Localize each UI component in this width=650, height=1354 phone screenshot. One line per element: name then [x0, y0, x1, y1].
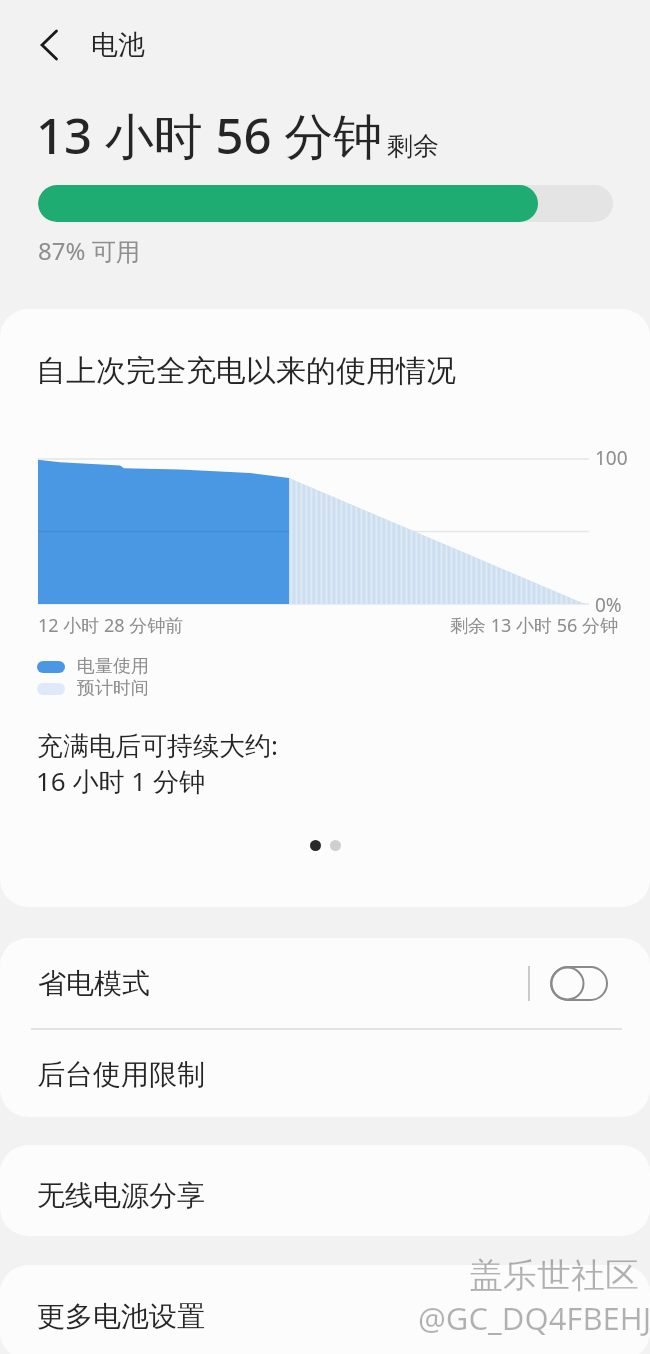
staticText: 0% [595, 592, 622, 618]
button[interactable]: 后台使用限制 [0, 1031, 650, 1117]
staticText: 剩余 13 小时 56 分钟 [450, 613, 618, 638]
staticText: 无线电源分享 [37, 1178, 205, 1213]
staticText: 100 [595, 445, 628, 471]
staticText: 剩余 [387, 130, 439, 163]
staticText: 盖乐世社区 [469, 1254, 639, 1297]
staticText: 后台使用限制 [37, 1057, 205, 1092]
button[interactable]: 省电模式 [0, 938, 650, 1030]
staticText: 电池 [91, 28, 145, 62]
staticText: 12 小时 28 分钟前 [38, 613, 184, 638]
staticText: 电量使用 [77, 655, 149, 678]
staticText: 预计时间 [77, 677, 149, 700]
button[interactable]: Back [21, 17, 77, 73]
button[interactable]: Page 2 [330, 840, 341, 851]
staticText: 87% 可用 [38, 234, 140, 267]
staticText: 更多电池设置 [37, 1299, 205, 1334]
staticText: 13 小时 56 分钟 [36, 102, 383, 169]
button[interactable]: 更多电池设置 [0, 1265, 650, 1354]
staticText: 16 小时 1 分钟 [36, 763, 205, 799]
staticText: 自上次完全充电以来的使用情况 [36, 352, 456, 390]
button[interactable]: Page 1 [310, 840, 321, 851]
button[interactable]: Power saving mode toggle [550, 966, 608, 1001]
staticText: 省电模式 [38, 966, 150, 1001]
staticText: 充满电后可持续大约: [37, 727, 278, 763]
staticText: @GC_DQ4FBEHJ [418, 1297, 650, 1339]
button[interactable]: 无线电源分享 [0, 1145, 650, 1236]
